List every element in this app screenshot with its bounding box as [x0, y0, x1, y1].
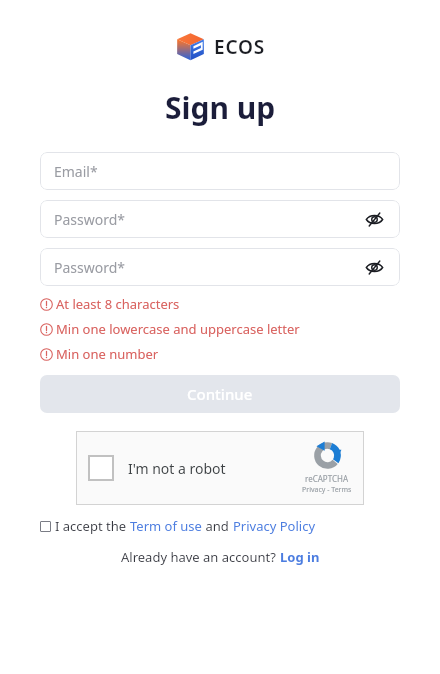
- staticText: Privacy - Terms: [302, 485, 352, 495]
- staticText: Min one number: [56, 345, 159, 363]
- staticText: reCAPTCHA: [305, 473, 349, 484]
- button[interactable]: Privacy Policy: [233, 517, 316, 535]
- staticText: Privacy Policy: [233, 517, 316, 535]
- staticText: Log in: [280, 548, 320, 566]
- button[interactable]: I'm not a robot checkbox: [76, 431, 364, 505]
- staticText: Password*: [54, 210, 126, 229]
- staticText: Password*: [54, 258, 126, 277]
- staticText: Sign up: [165, 87, 276, 128]
- staticText: Term of use: [130, 517, 202, 535]
- staticText: and: [202, 517, 233, 535]
- button[interactable]: I'm not a robot checkbox: [88, 455, 114, 481]
- button[interactable]: Show password: [362, 207, 386, 231]
- button[interactable]: Password*: [40, 248, 400, 286]
- button[interactable]: Continue: [40, 375, 400, 413]
- button[interactable]: Term of use: [130, 517, 202, 535]
- staticText: At least 8 characters: [56, 295, 180, 313]
- staticText: Email*: [54, 162, 98, 181]
- button[interactable]: Email*: [40, 152, 400, 190]
- staticText: ECOS: [214, 34, 265, 60]
- staticText: Already have an account?: [121, 548, 280, 566]
- staticText: Continue: [187, 384, 253, 404]
- button[interactable]: Accept terms checkbox: [40, 521, 51, 532]
- staticText: I'm not a robot: [128, 459, 226, 478]
- button[interactable]: Password*: [40, 200, 400, 238]
- staticText: I accept the: [55, 517, 130, 535]
- button[interactable]: Show password: [362, 255, 386, 279]
- staticText: Min one lowercase and uppercase letter: [56, 320, 300, 338]
- button[interactable]: Log in: [280, 548, 320, 566]
